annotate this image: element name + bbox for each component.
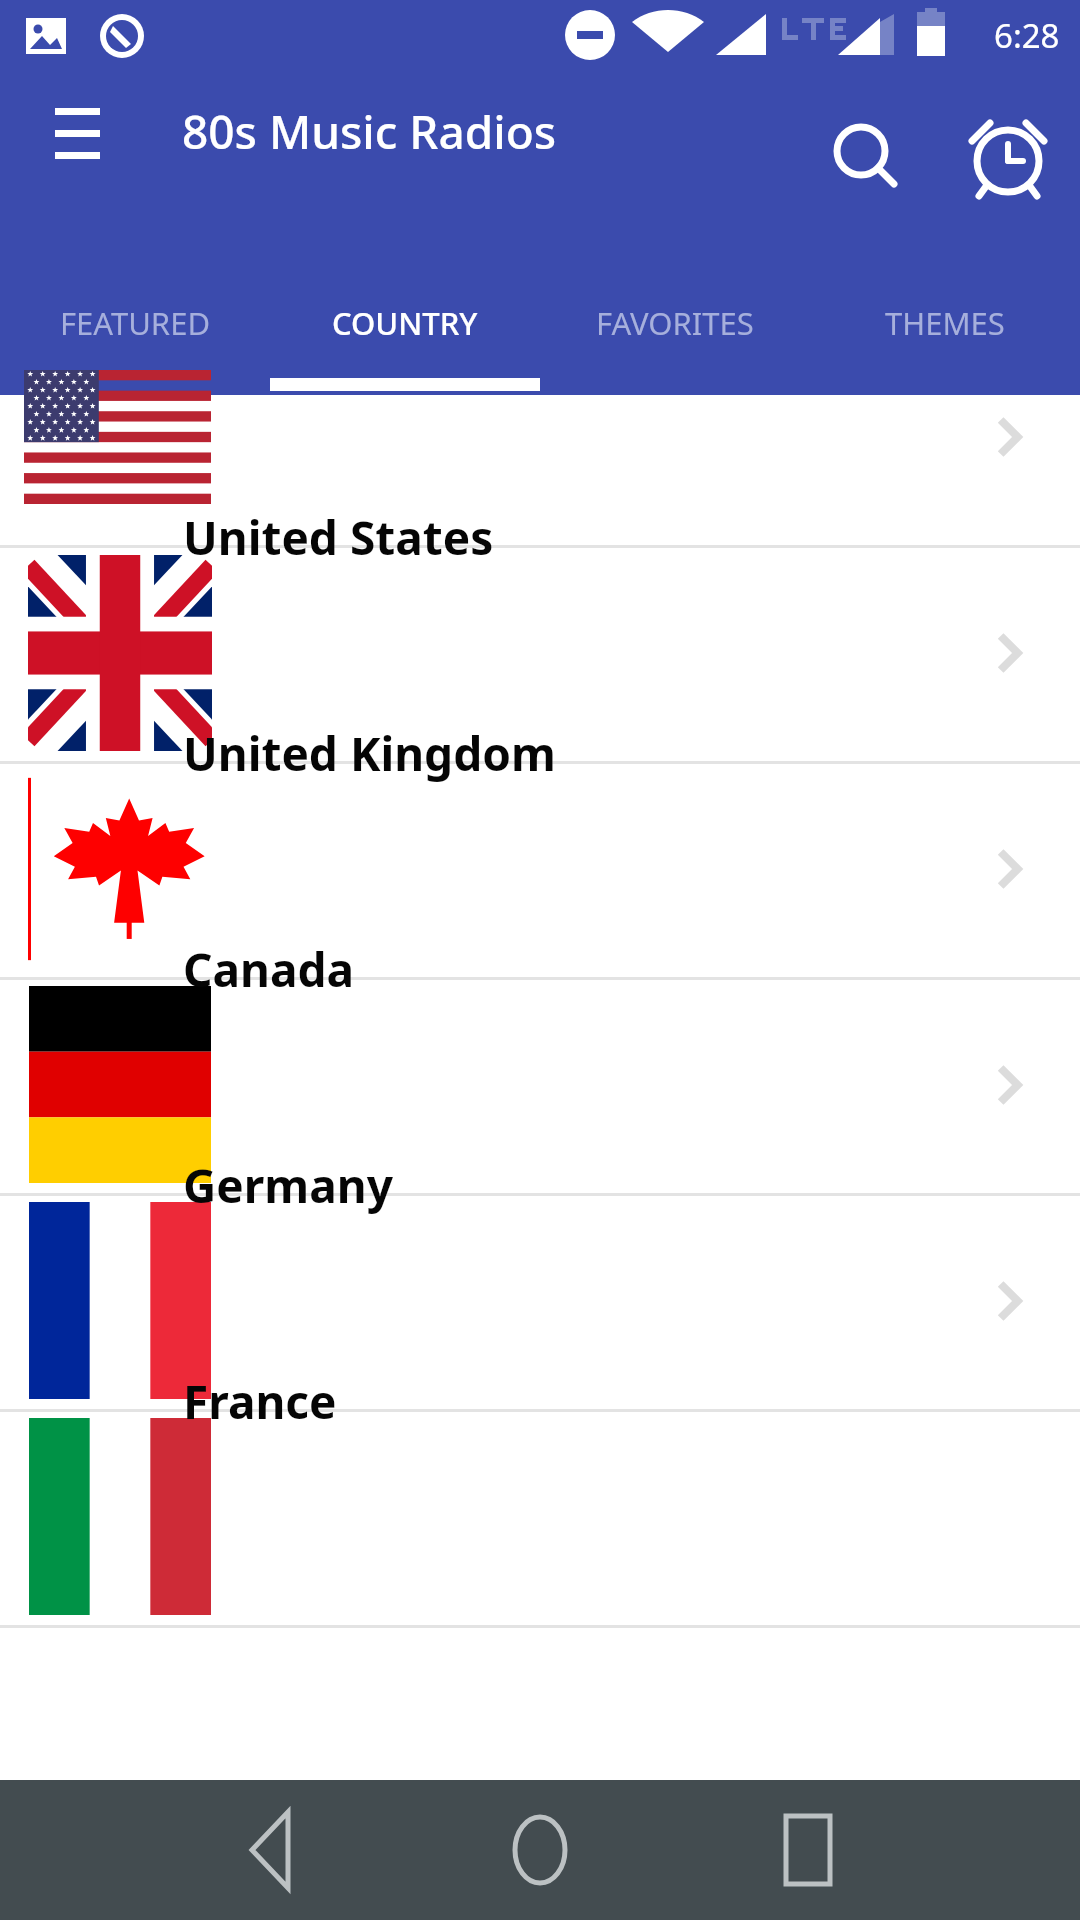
button[interactable]: Canada	[0, 861, 1080, 1077]
button[interactable]: Home	[360, 1780, 720, 1920]
staticText: United States	[183, 506, 494, 569]
staticText: Canada	[183, 938, 355, 1001]
button[interactable]: Germany	[0, 1077, 1080, 1293]
staticText: FAVORITES	[596, 302, 754, 344]
button[interactable]: Sleep timer	[958, 81, 1058, 181]
staticText: United Kingdom	[183, 722, 556, 785]
button[interactable]: Open navigation drawer	[22, 83, 118, 179]
button[interactable]: Search	[858, 81, 958, 181]
button[interactable]: United States	[0, 429, 1080, 645]
staticText: COUNTRY	[332, 302, 478, 344]
button[interactable]: FAVORITES	[540, 192, 810, 395]
button[interactable]: FEATURED	[0, 192, 270, 395]
staticText: FEATURED	[60, 302, 211, 344]
button[interactable]: United Kingdom	[0, 645, 1080, 861]
button[interactable]: Recent apps	[720, 1780, 1080, 1920]
staticText: Germany	[183, 1154, 393, 1217]
button[interactable]: COUNTRY	[270, 192, 540, 395]
button[interactable]: THEMES	[810, 192, 1080, 395]
staticText: 80s Music Radios	[182, 100, 557, 163]
button[interactable]: France	[0, 1293, 1080, 1509]
staticText: France	[183, 1370, 337, 1433]
staticText: THEMES	[885, 302, 1005, 344]
button[interactable]: Back	[0, 1780, 360, 1920]
staticText: 6:28	[994, 13, 1060, 58]
